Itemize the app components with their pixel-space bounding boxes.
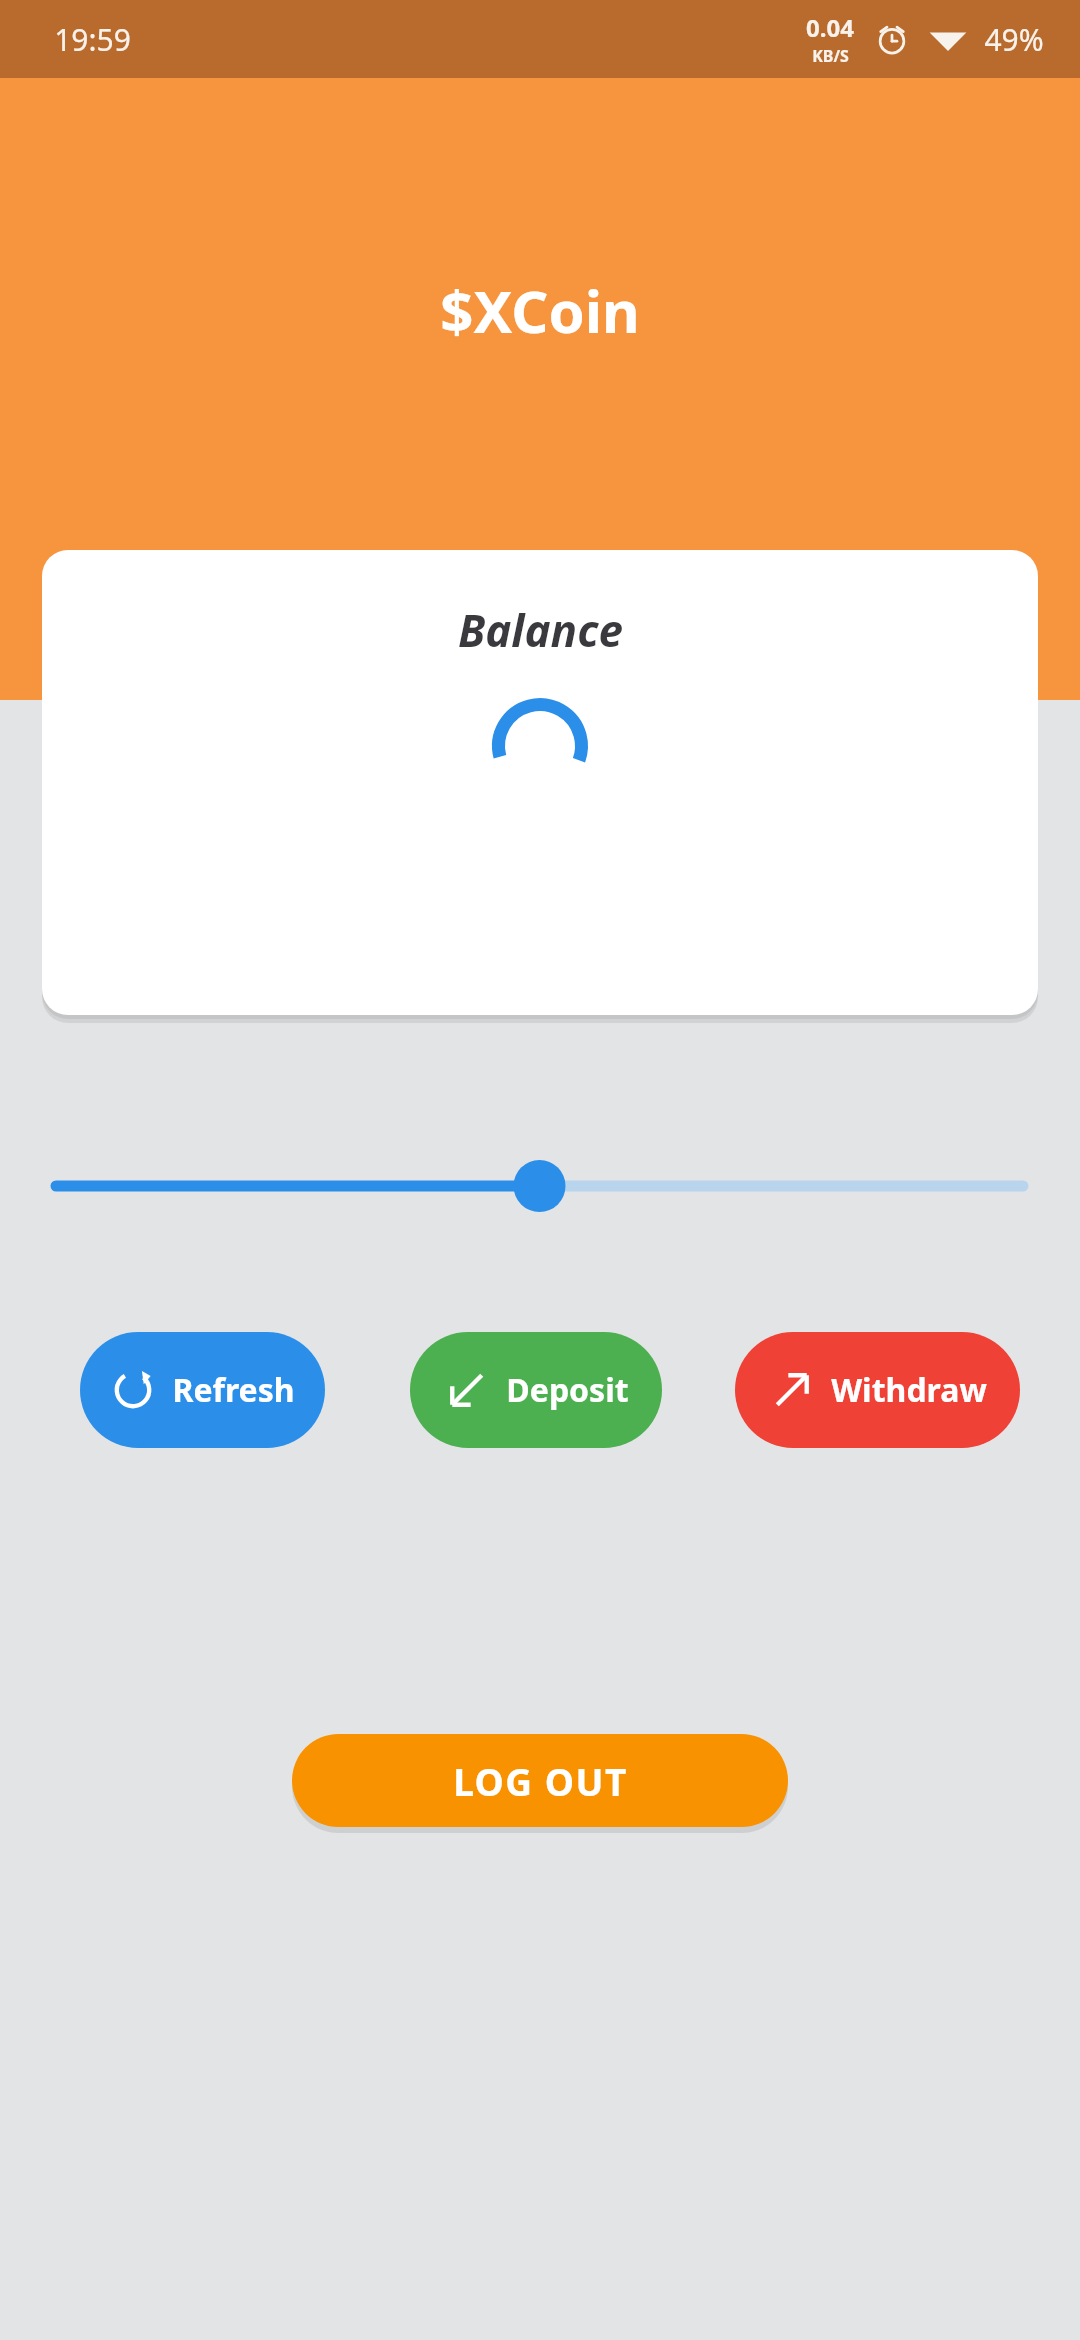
staticText: 49% xyxy=(984,19,1044,60)
staticText: Deposit xyxy=(506,1368,629,1412)
button[interactable]: Withdraw xyxy=(735,1332,1020,1448)
staticText: LOG OUT xyxy=(453,1756,628,1806)
staticText: Balance xyxy=(458,600,623,660)
staticText: 0.04 xyxy=(806,11,854,44)
staticText: 19:59 xyxy=(54,19,131,60)
staticText: KB/S xyxy=(812,45,849,67)
staticText: Refresh xyxy=(172,1368,295,1412)
button[interactable]: Log out xyxy=(292,1734,788,1827)
button[interactable] xyxy=(0,1140,1080,1232)
staticText: Withdraw xyxy=(831,1368,987,1412)
button[interactable]: Deposit xyxy=(410,1332,662,1448)
button[interactable]: Refresh xyxy=(80,1332,325,1448)
staticText: $XCoin xyxy=(440,271,640,350)
